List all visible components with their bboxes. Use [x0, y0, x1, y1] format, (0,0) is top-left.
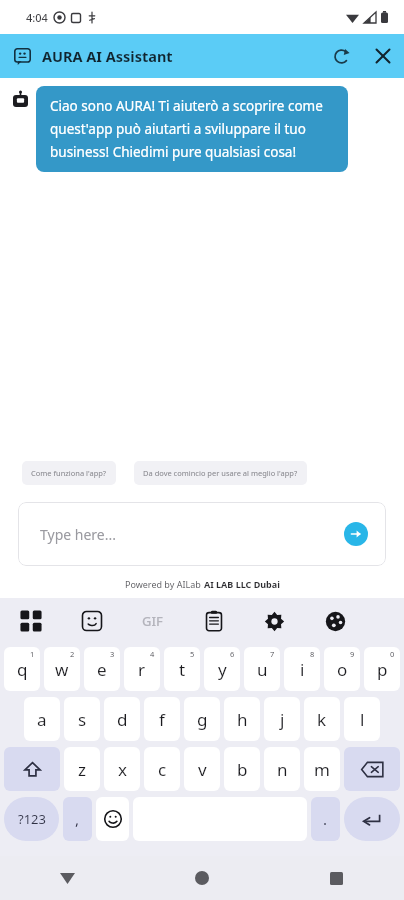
staticText: o — [337, 658, 348, 681]
button[interactable]: n — [264, 747, 300, 791]
staticText: 3 — [110, 649, 115, 659]
button[interactable]: d — [104, 697, 140, 741]
staticText: z — [78, 758, 86, 781]
staticText: ?123 — [18, 810, 46, 828]
staticText: q — [17, 658, 28, 681]
button[interactable]: i — [284, 647, 320, 691]
button[interactable]: k — [304, 697, 340, 741]
button[interactable]: GIF — [122, 598, 183, 644]
staticText: t — [179, 658, 186, 681]
button[interactable]: j — [264, 697, 300, 741]
staticText: y — [218, 658, 227, 681]
button[interactable]: Hide keyboard — [0, 856, 134, 900]
button[interactable]: Backspace — [344, 747, 400, 791]
staticText: 4:04 — [26, 10, 48, 25]
staticText: w — [55, 658, 69, 681]
staticText: s — [78, 708, 87, 731]
button[interactable]: t — [164, 647, 200, 691]
button[interactable]: Theme — [305, 598, 366, 644]
staticText: b — [237, 758, 248, 781]
staticText: r — [138, 658, 146, 681]
staticText: 1 — [30, 649, 35, 659]
button[interactable]: m — [304, 747, 340, 791]
staticText: . — [323, 809, 328, 829]
button[interactable]: g — [184, 697, 220, 741]
staticText: 6 — [230, 649, 235, 659]
staticText: x — [118, 758, 127, 781]
button[interactable]: p — [364, 647, 400, 691]
staticText: AI LAB LLC Dubai — [204, 578, 280, 590]
button[interactable]: w — [44, 647, 80, 691]
staticText: c — [158, 758, 167, 781]
staticText: k — [317, 708, 327, 731]
button[interactable]: f — [144, 697, 180, 741]
staticText: a — [37, 708, 47, 731]
button[interactable]: c — [144, 747, 180, 791]
staticText: Ciao sono AURA! Ti aiuterò a scoprire co… — [50, 97, 334, 161]
button[interactable]: q — [4, 647, 40, 691]
button[interactable]: Enter — [344, 797, 400, 841]
button[interactable]: e — [84, 647, 120, 691]
staticText: 5 — [190, 649, 195, 659]
staticText: 4 — [150, 649, 155, 659]
button[interactable]: Send message — [344, 522, 368, 546]
button[interactable]: z — [64, 747, 100, 791]
staticText: 9 — [350, 649, 355, 659]
button[interactable]: Stickers — [61, 598, 122, 644]
staticText: GIF — [142, 612, 163, 630]
staticText: Type here... — [40, 525, 116, 544]
button[interactable]: l — [344, 697, 380, 741]
button[interactable]: Shift — [4, 747, 60, 791]
staticText: d — [117, 708, 128, 731]
staticText: 8 — [310, 649, 315, 659]
staticText: p — [377, 658, 388, 681]
staticText: h — [237, 708, 248, 731]
button[interactable]: Da dove comincio per usare al meglio l'a… — [134, 461, 307, 485]
button[interactable]: Clipboard — [183, 598, 244, 644]
staticText: Powered by AILab — [125, 578, 204, 590]
button[interactable]: x — [104, 747, 140, 791]
button[interactable]: h — [224, 697, 260, 741]
button[interactable]: Close — [362, 35, 404, 77]
staticText: , — [75, 809, 80, 829]
button[interactable]: Type here... — [18, 502, 386, 566]
staticText: e — [97, 658, 107, 681]
staticText: Da dove comincio per usare al meglio l'a… — [143, 468, 298, 478]
button[interactable]: Come funziona l'app? — [22, 461, 116, 485]
staticText: u — [257, 658, 268, 681]
button[interactable]: Comma — [63, 797, 92, 841]
button[interactable]: o — [324, 647, 360, 691]
button[interactable]: Emoji — [96, 797, 129, 841]
button[interactable]: App grid — [0, 598, 61, 644]
button[interactable]: y — [204, 647, 240, 691]
staticText: Come funziona l'app? — [31, 468, 107, 478]
button[interactable]: r — [124, 647, 160, 691]
staticText: l — [360, 708, 365, 731]
button[interactable]: s — [64, 697, 100, 741]
button[interactable]: v — [184, 747, 220, 791]
staticText: 2 — [70, 649, 75, 659]
staticText: 0 — [390, 649, 395, 659]
button[interactable]: Refresh conversation — [320, 35, 362, 77]
button[interactable]: u — [244, 647, 280, 691]
staticText: m — [314, 758, 330, 781]
staticText: g — [197, 708, 208, 731]
button[interactable]: Home — [134, 856, 269, 900]
button[interactable]: Ciao sono AURA! Ti aiuterò a scoprire co… — [36, 86, 348, 172]
button[interactable]: ?123 — [4, 797, 59, 841]
button[interactable]: Recent apps — [269, 856, 404, 900]
button[interactable]: Keyboard settings — [244, 598, 305, 644]
staticText: 7 — [270, 649, 275, 659]
button[interactable]: Period — [311, 797, 340, 841]
staticText: v — [198, 758, 207, 781]
button[interactable]: a — [24, 697, 60, 741]
staticText: i — [300, 658, 305, 681]
staticText: AURA AI Assistant — [42, 46, 173, 66]
staticText: j — [280, 708, 285, 731]
staticText: n — [277, 758, 288, 781]
staticText: f — [159, 708, 165, 731]
button[interactable]: b — [224, 747, 260, 791]
